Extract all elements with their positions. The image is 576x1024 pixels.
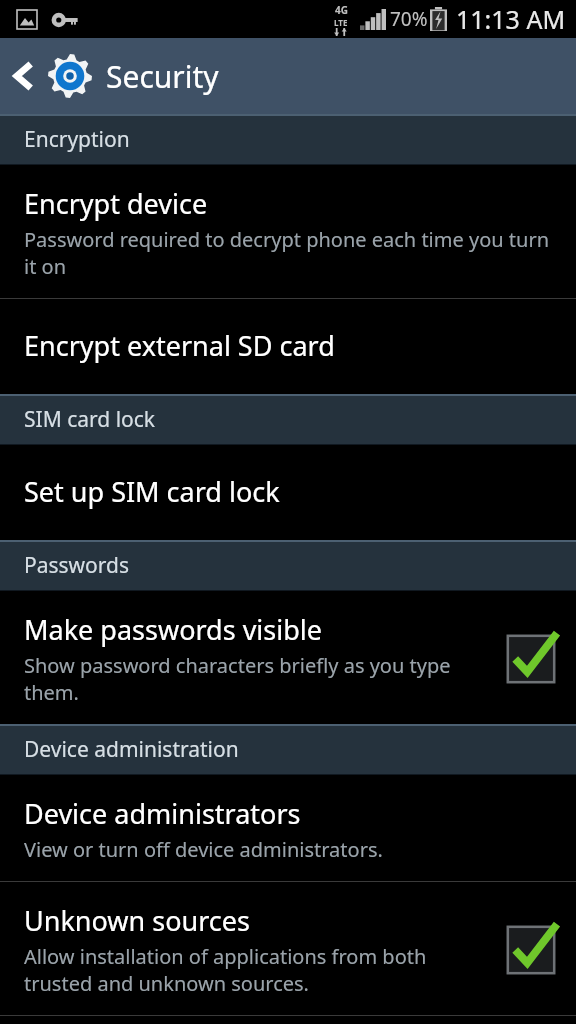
staticText: Security (106, 56, 219, 97)
staticText: Encrypt device (24, 185, 208, 222)
button[interactable]: Encrypt external SD card (0, 299, 576, 394)
button[interactable]: Encrypt device (0, 165, 576, 298)
button[interactable]: Device administrators (0, 775, 576, 881)
staticText: Device administrators (24, 795, 301, 832)
staticText: Passwords (24, 551, 130, 580)
staticText: Show password characters briefly as you … (24, 652, 490, 706)
staticText: 11:13 AM (456, 2, 566, 36)
button[interactable]: Unknown sources (0, 882, 576, 1015)
staticText: 4G (335, 3, 348, 17)
button[interactable]: Set up SIM card lock (0, 445, 576, 540)
staticText: LTE (334, 17, 348, 28)
staticText: View or turn off device administrators. (24, 836, 383, 863)
button[interactable]: Toggle setting (502, 630, 560, 688)
button[interactable]: Back (0, 48, 225, 104)
staticText: Allow installation of applications from … (24, 943, 490, 997)
staticText: Password required to decrypt phone each … (24, 226, 560, 280)
button[interactable]: Toggle setting (502, 921, 560, 979)
staticText: Encryption (24, 125, 130, 154)
staticText: Make passwords visible (24, 611, 323, 648)
staticText: Set up SIM card lock (24, 473, 280, 510)
staticText: 70% (390, 6, 428, 32)
button[interactable]: Make passwords visible (0, 591, 576, 724)
staticText: Device administration (24, 735, 239, 764)
staticText: Unknown sources (24, 902, 250, 939)
staticText: Encrypt external SD card (24, 327, 335, 364)
staticText: SIM card lock (24, 405, 156, 434)
